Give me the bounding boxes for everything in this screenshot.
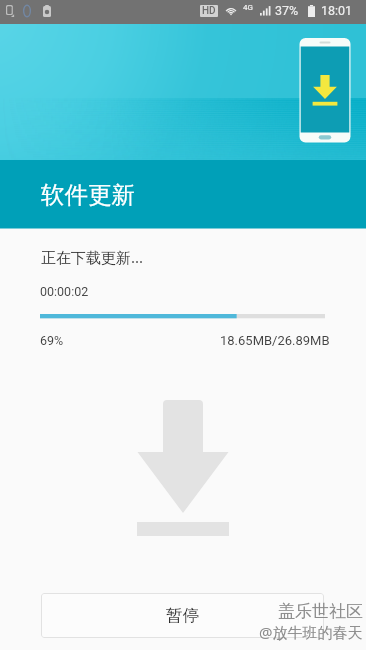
staticText: 软件更新 (41, 180, 135, 210)
staticText: 正在下载更新... (41, 247, 144, 267)
staticText: 盖乐世社区 (278, 601, 363, 622)
other: Wi-Fi (225, 4, 237, 17)
other: Screenshot captured (6, 5, 15, 17)
staticText: 00:00:02 (40, 284, 89, 299)
staticText: @放牛班的春天 (259, 622, 363, 642)
other: Mobile signal (260, 5, 272, 17)
other: Do not disturb (21, 5, 33, 17)
staticText: 18:01 (321, 3, 353, 18)
button[interactable]: 暂停 (41, 593, 324, 638)
staticText: 暂停 (166, 605, 199, 626)
other: Sync (43, 5, 51, 17)
staticText: 18.65MB/26.89MB (220, 333, 330, 348)
staticText: 37% (275, 3, 299, 18)
staticText: 4G (243, 3, 253, 12)
staticText: 69% (40, 333, 64, 348)
staticText: HD (202, 5, 216, 17)
other: Battery (308, 5, 315, 17)
